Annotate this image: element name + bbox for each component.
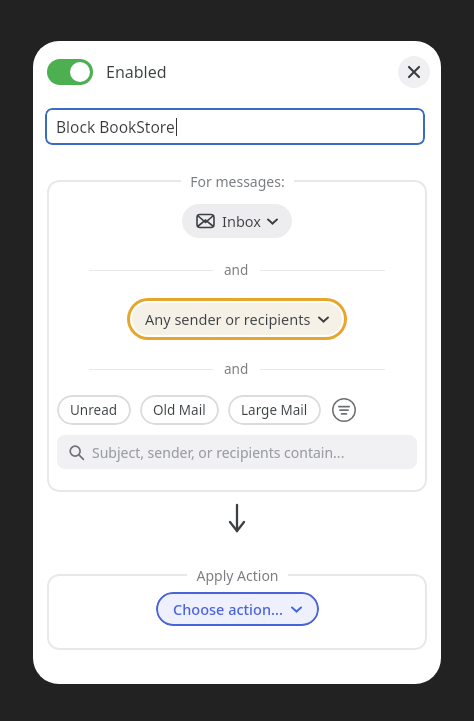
staticText: Block BookStore [56,116,175,137]
button[interactable]: Enabled toggle [47,59,93,85]
staticText: Any sender or recipients [145,309,311,329]
staticText: Subject, sender, or recipients contain..… [92,443,345,462]
button[interactable]: More filters [331,397,357,423]
staticText: and [224,261,249,279]
staticText: Unread [70,401,118,419]
staticText: Apply Action [196,566,279,585]
button[interactable]: Block BookStore [45,108,425,145]
staticText: Inbox [222,211,261,231]
button[interactable]: Large Mail [228,395,321,425]
staticText: For messages: [190,172,285,191]
staticText: Large Mail [241,401,308,419]
button[interactable]: Subject, sender, or recipients contain..… [57,435,417,469]
button[interactable]: Inbox [182,204,292,238]
button[interactable]: Old Mail [140,395,219,425]
staticText: and [224,360,249,378]
staticText: Enabled [106,61,167,83]
button[interactable]: Choose action... [156,592,319,626]
staticText: Choose action... [173,599,283,619]
staticText: Old Mail [153,401,206,419]
button[interactable]: Close [398,56,430,88]
button[interactable]: Unread [57,395,131,425]
button[interactable]: Any sender or recipients [132,303,342,335]
